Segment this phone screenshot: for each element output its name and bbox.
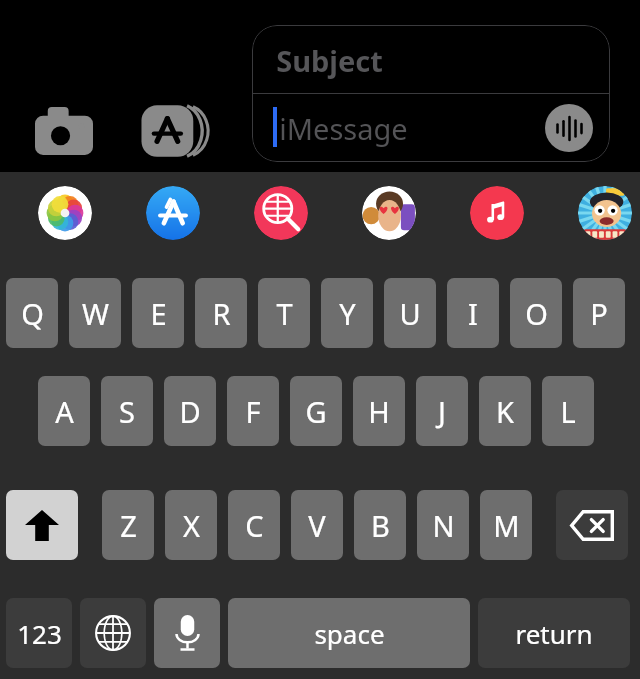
staticText: H: [368, 392, 390, 431]
button[interactable]: W: [69, 278, 121, 348]
staticText: return: [515, 616, 593, 651]
button[interactable]: N: [417, 490, 469, 560]
button[interactable]: X: [165, 490, 217, 560]
button[interactable]: Dictation: [154, 598, 220, 668]
button[interactable]: return: [478, 598, 630, 668]
staticText: X: [183, 506, 200, 545]
staticText: Q: [21, 294, 44, 333]
button[interactable]: Image search: [254, 186, 308, 240]
button[interactable]: O: [510, 278, 562, 348]
button[interactable]: U: [384, 278, 436, 348]
button[interactable]: Game: [578, 186, 632, 240]
button[interactable]: D: [164, 376, 216, 446]
staticText: V: [308, 506, 326, 545]
button[interactable]: M: [480, 490, 532, 560]
button[interactable]: P: [573, 278, 625, 348]
staticText: space: [314, 616, 385, 651]
button[interactable]: Q: [6, 278, 58, 348]
staticText: C: [245, 506, 264, 545]
staticText: K: [496, 392, 514, 431]
staticText: N: [432, 506, 455, 545]
button[interactable]: B: [354, 490, 406, 560]
button[interactable]: R: [195, 278, 247, 348]
staticText: Subject: [276, 41, 383, 80]
staticText: L: [560, 392, 576, 431]
button[interactable]: V: [291, 490, 343, 560]
button[interactable]: C: [228, 490, 280, 560]
button[interactable]: Y: [321, 278, 373, 348]
button[interactable]: space: [228, 598, 470, 668]
staticText: Z: [120, 506, 137, 545]
staticText: O: [525, 294, 548, 333]
button[interactable]: Z: [102, 490, 154, 560]
staticText: G: [305, 392, 327, 431]
button[interactable]: S: [101, 376, 153, 446]
button[interactable]: Memoji: [362, 186, 416, 240]
staticText: M: [493, 506, 520, 545]
button[interactable]: Music: [470, 186, 524, 240]
button[interactable]: T: [258, 278, 310, 348]
staticText: F: [245, 392, 261, 431]
staticText: P: [590, 294, 608, 333]
button[interactable]: G: [290, 376, 342, 446]
staticText: J: [438, 392, 446, 431]
button[interactable]: E: [132, 278, 184, 348]
button[interactable]: Shift: [6, 490, 78, 560]
staticText: B: [371, 506, 390, 545]
button[interactable]: Apps: [140, 102, 214, 160]
button[interactable]: F: [227, 376, 279, 446]
staticText: iMessage: [279, 109, 408, 148]
staticText: A: [55, 392, 74, 431]
button[interactable]: H: [353, 376, 405, 446]
button[interactable]: App Store: [146, 186, 200, 240]
staticText: T: [276, 294, 293, 333]
button[interactable]: L: [542, 376, 594, 446]
staticText: R: [212, 294, 231, 333]
button[interactable]: Subject: [252, 25, 610, 162]
button[interactable]: J: [416, 376, 468, 446]
staticText: S: [119, 392, 135, 431]
button[interactable]: Next keyboard: [80, 598, 146, 668]
button[interactable]: Camera: [33, 104, 95, 158]
staticText: D: [179, 392, 201, 431]
staticText: 123: [17, 616, 62, 651]
button[interactable]: I: [447, 278, 499, 348]
button[interactable]: K: [479, 376, 531, 446]
button[interactable]: A: [38, 376, 90, 446]
button[interactable]: Backspace: [556, 490, 628, 560]
staticText: Y: [339, 294, 356, 333]
staticText: U: [399, 294, 421, 333]
button[interactable]: 123: [6, 598, 72, 668]
staticText: W: [82, 294, 109, 333]
staticText: I: [468, 294, 478, 333]
staticText: E: [150, 294, 167, 333]
button[interactable]: Record audio: [545, 104, 593, 152]
button[interactable]: Photos: [38, 186, 92, 240]
